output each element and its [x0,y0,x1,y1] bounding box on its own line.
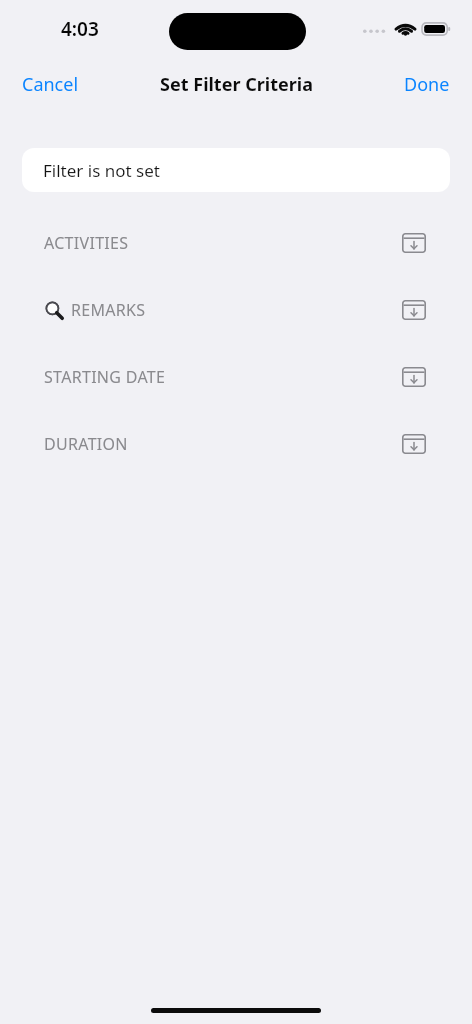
button[interactable]: DURATION [0,420,472,468]
staticText: Done [404,72,450,97]
button[interactable]: Collapse ACTIVITIES [402,233,426,253]
button[interactable]: Collapse REMARKS [402,300,426,320]
staticText: ACTIVITIES [44,232,129,254]
button[interactable]: Collapse DURATION [402,434,426,454]
staticText: DURATION [44,433,128,455]
button[interactable]: Filter is not set [22,148,450,192]
staticText: Filter is not set [43,159,160,182]
staticText: REMARKS [71,299,146,321]
button[interactable]: Done [394,66,472,103]
button[interactable]: Cancel [0,66,89,103]
staticText: STARTING DATE [44,366,166,388]
staticText: Set Filter Criteria [160,72,313,97]
staticText: Cancel [22,72,79,97]
button[interactable]: Collapse STARTING DATE [402,367,426,387]
button[interactable]: ACTIVITIES [0,219,472,267]
staticText: 4:03 [61,16,99,42]
button[interactable]: REMARKS [0,286,472,334]
button[interactable]: STARTING DATE [0,353,472,401]
